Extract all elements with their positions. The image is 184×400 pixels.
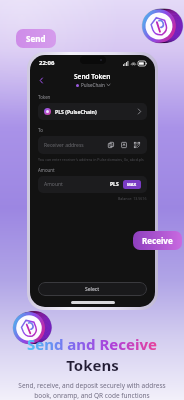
button[interactable]: MAX xyxy=(123,180,141,189)
button[interactable]: Address book xyxy=(120,141,128,149)
staticText: PulseChain xyxy=(81,82,105,88)
button[interactable]: Select xyxy=(38,282,147,296)
staticText: Receiver address xyxy=(44,142,84,149)
staticText: Receive xyxy=(142,235,173,246)
button[interactable]: Receive xyxy=(133,231,182,250)
staticText: You can enter receiver's address in Puls… xyxy=(38,157,144,162)
button[interactable]: Scan QR code xyxy=(133,141,141,149)
staticText: PLS xyxy=(110,181,119,188)
staticText: To xyxy=(38,127,43,133)
staticText: 22:06 xyxy=(39,59,55,67)
button[interactable]: Send xyxy=(16,29,56,48)
staticText: Amount xyxy=(38,167,55,173)
staticText: Tokens xyxy=(66,355,119,375)
button[interactable]: Paste xyxy=(107,141,115,149)
staticText: Send Token xyxy=(74,72,111,81)
staticText: Select xyxy=(85,286,100,293)
staticText: Balance: 13.5616 xyxy=(118,196,147,201)
button[interactable]: Back xyxy=(35,74,47,86)
button[interactable]: PLS (PulseChain) xyxy=(38,103,147,120)
staticText: Amount xyxy=(44,181,63,188)
staticText: PLS (PulseChain) xyxy=(55,108,97,115)
staticText: Send and Receive xyxy=(27,334,157,354)
staticText: Send, receive, and deposit securely with… xyxy=(18,381,166,400)
staticText: MAX xyxy=(127,182,137,187)
staticText: Token xyxy=(38,94,51,100)
staticText: Send xyxy=(26,33,46,44)
